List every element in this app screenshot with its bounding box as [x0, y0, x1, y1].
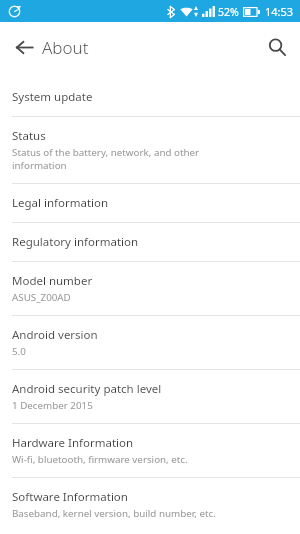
button[interactable]: Android version	[0, 316, 300, 369]
staticText: Android version	[12, 327, 98, 343]
staticText: About	[42, 36, 89, 59]
staticText: Legal information	[12, 195, 109, 211]
button[interactable]: Software Information	[0, 478, 300, 534]
button[interactable]: System update	[0, 78, 300, 116]
staticText: Wi-fi, bluetooth, firmware version, etc.	[12, 453, 188, 466]
staticText: 1 December 2015	[12, 399, 93, 412]
staticText: Software Information	[12, 489, 128, 505]
staticText: Status	[12, 128, 46, 144]
staticText: System update	[12, 89, 93, 105]
button[interactable]: Search	[258, 28, 296, 66]
staticText: 14:53	[265, 4, 294, 19]
staticText: ASUS_Z00AD	[12, 291, 71, 304]
button[interactable]: Status	[0, 117, 300, 183]
button[interactable]: Hardware Information	[0, 424, 300, 477]
staticText: information	[12, 159, 67, 172]
button[interactable]: Legal information	[0, 184, 300, 222]
button[interactable]: Back	[6, 29, 42, 65]
staticText: Status of the battery, network, and othe…	[12, 146, 200, 159]
button[interactable]: Android security patch level	[0, 370, 300, 423]
button[interactable]: Regulatory information	[0, 223, 300, 261]
staticText: 5.0	[12, 345, 26, 358]
staticText: Regulatory information	[12, 234, 139, 250]
staticText: Android security patch level	[12, 381, 162, 397]
staticText: 52%	[218, 5, 239, 19]
staticText: Hardware Information	[12, 435, 134, 451]
button[interactable]: Model number	[0, 262, 300, 315]
staticText: Baseband, kernel version, build number, …	[12, 507, 216, 520]
staticText: Model number	[12, 273, 93, 289]
